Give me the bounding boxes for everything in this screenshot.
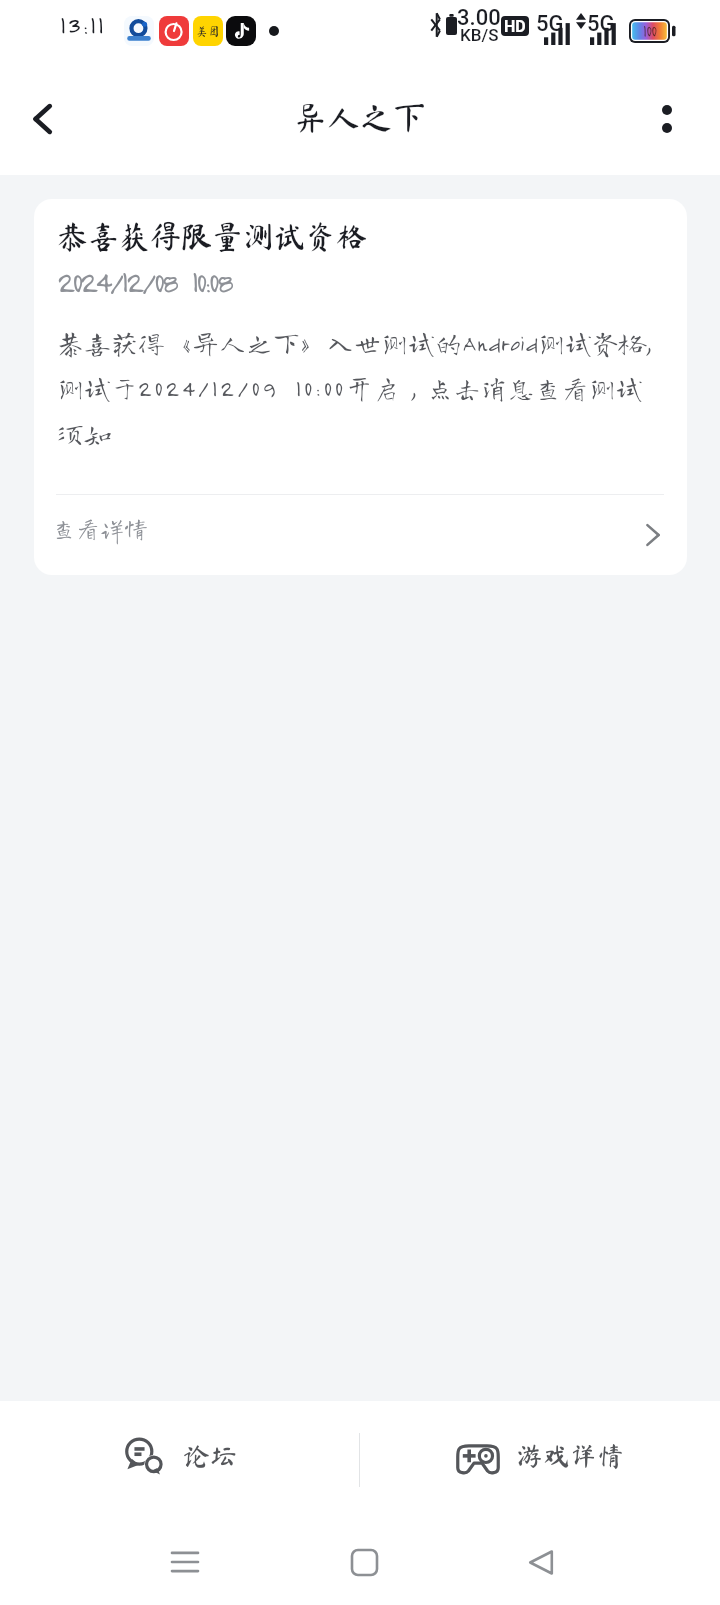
button[interactable]: 恭喜获得限量测试资格	[34, 199, 687, 575]
button[interactable]: Back	[501, 1522, 581, 1602]
staticText: 美团	[196, 25, 221, 37]
staticText: 论坛	[183, 1442, 237, 1469]
staticText: 100	[643, 21, 657, 40]
staticText: 13:11	[60, 10, 106, 40]
button[interactable]: 游戏详情	[360, 1401, 720, 1519]
button[interactable]: Back	[12, 88, 74, 150]
staticText: 恭喜获得限量测试资格	[57, 221, 367, 252]
staticText: 3.00	[457, 5, 501, 31]
button[interactable]: Recent apps	[145, 1522, 225, 1602]
staticText: 查看详情	[52, 516, 148, 540]
staticText: 2024/12/08 10:08	[57, 263, 231, 299]
staticText: 游戏详情	[516, 1442, 624, 1469]
staticText: 异人之下	[294, 101, 426, 134]
button[interactable]: Home	[324, 1522, 404, 1602]
button[interactable]: 论坛	[0, 1401, 359, 1519]
staticText: 5G	[536, 11, 564, 37]
button[interactable]: More options	[638, 88, 700, 150]
staticText: 5G	[587, 11, 615, 37]
staticText: KB/S	[460, 25, 499, 45]
staticText: 恭喜获得《异人之下》入世测试的Android测试资格, 测试于2024/12/0…	[57, 329, 651, 448]
staticText: HD	[504, 17, 526, 36]
